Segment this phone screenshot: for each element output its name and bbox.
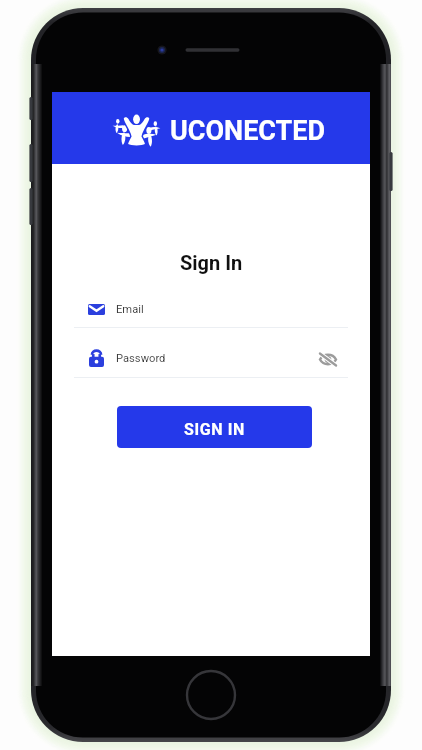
staticText: UCONECTED bbox=[170, 115, 326, 147]
button[interactable]: Email bbox=[74, 295, 348, 328]
button[interactable]: UCONECTED bbox=[52, 92, 370, 164]
button[interactable]: Show password bbox=[315, 348, 341, 370]
staticText: Email bbox=[116, 303, 144, 316]
button[interactable]: Password bbox=[74, 345, 348, 378]
staticText: SIGN IN bbox=[184, 420, 245, 439]
button[interactable]: SIGN IN bbox=[117, 406, 312, 448]
staticText: Sign In bbox=[180, 251, 243, 274]
staticText: Password bbox=[116, 352, 166, 365]
